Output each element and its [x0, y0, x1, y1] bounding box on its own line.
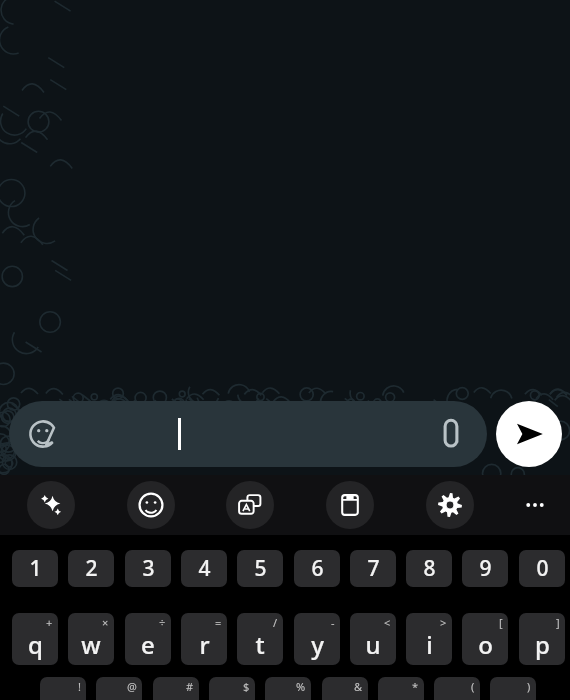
- button[interactable]: 7: [350, 550, 396, 587]
- staticText: 7: [367, 554, 380, 583]
- button[interactable]: ÷: [125, 613, 171, 665]
- staticText: 5: [254, 554, 267, 583]
- button[interactable]: 5: [237, 550, 283, 587]
- button[interactable]: +: [12, 613, 58, 665]
- staticText: w: [81, 628, 101, 661]
- button[interactable]: [: [462, 613, 508, 665]
- button[interactable]: ]: [519, 613, 565, 665]
- staticText: #: [186, 679, 194, 694]
- staticText: 4: [198, 554, 211, 583]
- staticText: y: [311, 628, 324, 661]
- button[interactable]: 1: [12, 550, 58, 587]
- button[interactable]: #: [153, 677, 199, 700]
- staticText: %: [296, 679, 306, 694]
- button[interactable]: More options: [511, 481, 559, 529]
- button[interactable]: Translate: [226, 481, 274, 529]
- staticText: e: [141, 628, 155, 661]
- staticText: ): [527, 679, 531, 694]
- button[interactable]: $: [209, 677, 255, 700]
- staticText: t: [255, 628, 265, 661]
- button[interactable]: >: [406, 613, 452, 665]
- button[interactable]: 0: [519, 550, 565, 587]
- staticText: =: [215, 615, 222, 630]
- staticText: [: [499, 615, 503, 630]
- staticText: r: [199, 628, 210, 661]
- button[interactable]: (: [434, 677, 480, 700]
- staticText: 9: [479, 554, 492, 583]
- staticText: p: [535, 628, 550, 661]
- button[interactable]: 8: [406, 550, 452, 587]
- staticText: 0: [536, 554, 549, 583]
- staticText: ]: [556, 615, 560, 630]
- button[interactable]: 9: [462, 550, 508, 587]
- button[interactable]: <: [350, 613, 396, 665]
- button[interactable]: &: [322, 677, 368, 700]
- staticText: $: [243, 679, 250, 694]
- staticText: ÷: [159, 615, 166, 630]
- button[interactable]: Emoji: [127, 481, 175, 529]
- button[interactable]: 6: [294, 550, 340, 587]
- staticText: u: [365, 628, 381, 661]
- staticText: o: [478, 628, 493, 661]
- button[interactable]: Settings: [426, 481, 474, 529]
- staticText: +: [46, 615, 53, 630]
- button[interactable]: 3: [125, 550, 171, 587]
- staticText: ×: [102, 615, 109, 630]
- button[interactable]: Save: [326, 481, 374, 529]
- staticText: i: [426, 628, 433, 661]
- staticText: <: [384, 615, 391, 630]
- staticText: *: [412, 679, 419, 694]
- button[interactable]: ×: [68, 613, 114, 665]
- button[interactable]: Stickers: [21, 412, 65, 456]
- staticText: !: [78, 679, 81, 694]
- button[interactable]: -: [294, 613, 340, 665]
- button[interactable]: !: [40, 677, 86, 700]
- staticText: 1: [29, 554, 42, 583]
- staticText: q: [28, 628, 43, 661]
- button[interactable]: Attach: [429, 412, 473, 456]
- button[interactable]: 4: [181, 550, 227, 587]
- button[interactable]: =: [181, 613, 227, 665]
- button[interactable]: 2: [68, 550, 114, 587]
- staticText: 2: [85, 554, 98, 583]
- staticText: 6: [311, 554, 324, 583]
- staticText: @: [127, 679, 137, 694]
- staticText: >: [440, 615, 447, 630]
- staticText: -: [331, 615, 335, 630]
- button[interactable]: @: [96, 677, 142, 700]
- button[interactable]: ): [490, 677, 536, 700]
- button[interactable]: AI assist: [27, 481, 75, 529]
- button[interactable]: Send: [496, 401, 562, 467]
- staticText: 8: [423, 554, 436, 583]
- staticText: 3: [142, 554, 155, 583]
- button[interactable]: %: [265, 677, 311, 700]
- staticText: /: [273, 615, 278, 630]
- button[interactable]: *: [378, 677, 424, 700]
- staticText: &: [354, 679, 363, 694]
- button[interactable]: /: [237, 613, 283, 665]
- button[interactable]: Stickers: [9, 401, 487, 467]
- staticText: (: [471, 679, 475, 694]
